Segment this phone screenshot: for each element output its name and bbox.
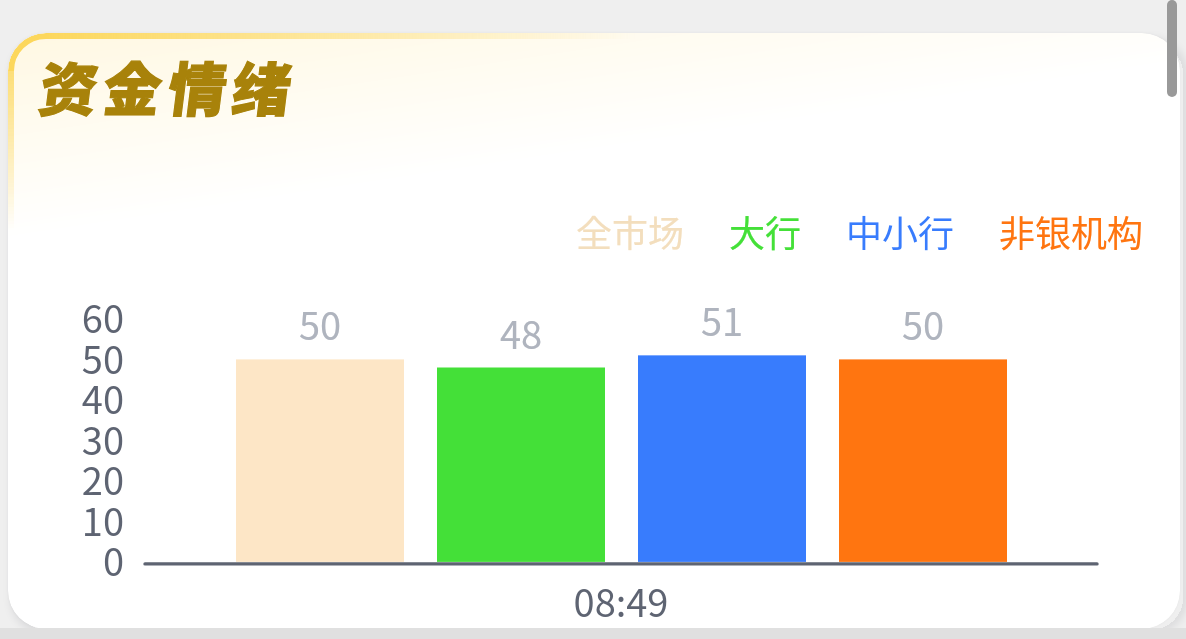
button[interactable]: 非银机构 — [999, 205, 1144, 257]
staticText: 60 — [40, 289, 124, 344]
staticText: 08:49 — [521, 573, 721, 628]
staticText: 0 — [40, 532, 124, 587]
button[interactable]: 资金情绪 — [35, 58, 307, 120]
staticText: 全市场 — [576, 205, 685, 257]
staticText: 50 — [873, 296, 973, 351]
staticText: 50 — [270, 296, 370, 351]
button[interactable]: 全市场 — [576, 205, 685, 257]
button[interactable]: 资金情绪 — [8, 33, 1180, 629]
button[interactable]: 大行 — [729, 205, 802, 257]
staticText: 中小行 — [846, 205, 955, 257]
staticText: 48 — [471, 305, 571, 360]
staticText: 30 — [40, 411, 124, 466]
staticText: 10 — [40, 492, 124, 547]
staticText: 40 — [40, 370, 124, 425]
staticText: 大行 — [729, 205, 802, 257]
staticText: 51 — [672, 292, 772, 347]
other: Scroll position — [1167, 0, 1177, 97]
button[interactable]: 中小行 — [846, 205, 955, 257]
staticText: 20 — [40, 451, 124, 506]
other: Bar chart — [8, 33, 1180, 629]
staticText: 50 — [40, 330, 124, 385]
staticText: 非银机构 — [999, 205, 1144, 257]
